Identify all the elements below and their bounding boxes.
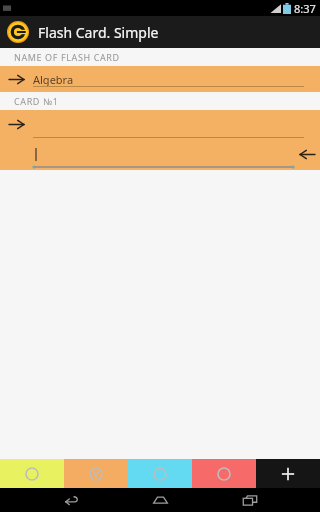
button[interactable]: Forward bbox=[0, 66, 33, 92]
staticText: NAME OF FLASH CARD bbox=[14, 51, 120, 63]
button[interactable]: Recents bbox=[230, 488, 270, 512]
button[interactable]: Home bbox=[140, 488, 180, 512]
staticText: Algebra bbox=[33, 72, 74, 87]
button[interactable]: Forward bbox=[0, 110, 320, 170]
button[interactable]: Hard bbox=[192, 459, 256, 488]
staticText: Flash Card. Simple bbox=[38, 23, 159, 42]
button[interactable]: App icon bbox=[6, 20, 30, 44]
button[interactable]: Add card bbox=[256, 459, 320, 488]
staticText: 8:37 bbox=[294, 1, 316, 16]
button[interactable]: Cards bbox=[0, 459, 64, 488]
button[interactable]: Back bbox=[294, 138, 320, 170]
button[interactable]: Forward bbox=[0, 66, 320, 92]
button[interactable]: Study bbox=[128, 459, 192, 488]
button[interactable]: Back bbox=[50, 488, 90, 512]
staticText: CARD №1 bbox=[14, 95, 59, 107]
button[interactable]: Verified bbox=[64, 459, 128, 488]
button[interactable]: Forward bbox=[0, 111, 33, 137]
